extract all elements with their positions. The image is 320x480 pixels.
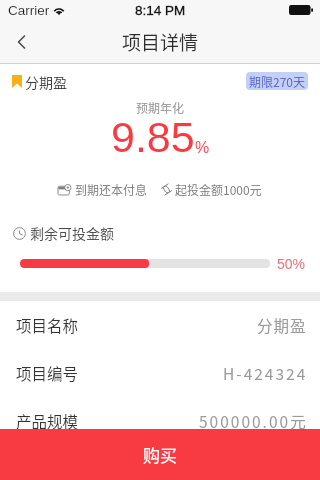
staticText: 期限270天 bbox=[249, 73, 305, 90]
staticText: 预期年化 bbox=[0, 99, 320, 116]
staticText: 500000.00元 bbox=[199, 410, 308, 432]
button[interactable]: 项目名称 bbox=[0, 301, 320, 349]
staticText: Carrier bbox=[8, 3, 50, 18]
button[interactable]: 项目编号 bbox=[0, 349, 320, 397]
button[interactable]: 产品规模 bbox=[0, 397, 320, 445]
staticText: 剩余可投金额 bbox=[30, 223, 114, 243]
staticText: 项目详情 bbox=[122, 28, 199, 56]
staticText: % bbox=[195, 139, 210, 157]
button[interactable]: Back bbox=[0, 20, 46, 64]
staticText: 分期盈 bbox=[25, 72, 67, 92]
staticText: 项目编号 bbox=[16, 362, 79, 384]
staticText: 起投金额1000元 bbox=[175, 181, 262, 198]
staticText: 到期还本付息 bbox=[75, 181, 148, 198]
staticText: H-424324 bbox=[223, 362, 308, 384]
staticText: 9.85 bbox=[111, 113, 195, 161]
staticText: 购买 bbox=[143, 442, 177, 467]
staticText: 产品规模 bbox=[16, 410, 79, 432]
button[interactable]: 购买 bbox=[0, 429, 320, 480]
staticText: 分期盈 bbox=[257, 314, 307, 336]
staticText: 8:14 PM bbox=[135, 3, 186, 18]
staticText: 项目名称 bbox=[16, 314, 79, 336]
staticText: 50% bbox=[277, 256, 306, 272]
